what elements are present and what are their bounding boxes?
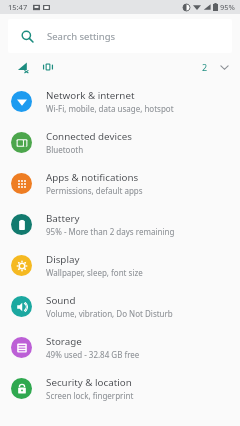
staticText: Permissions, default apps (46, 185, 143, 196)
staticText: Network & internet (46, 89, 135, 102)
staticText: 95% (220, 2, 235, 12)
staticText: Battery (46, 212, 80, 225)
staticText: Connected devices (46, 130, 132, 143)
staticText: Screen lock, fingerprint (46, 390, 134, 401)
staticText: Display (46, 253, 80, 266)
button[interactable]: Display (0, 245, 240, 286)
staticText: 49% used - 32.84 GB free (46, 349, 140, 360)
button[interactable]: Apps & notifications (0, 163, 240, 204)
staticText: Wallpaper, sleep, font size (46, 267, 143, 278)
button[interactable]: Network & internet (0, 81, 240, 122)
staticText: 15:47 (8, 2, 28, 12)
staticText: Bluetooth (46, 144, 84, 155)
button[interactable]: 2 (202, 61, 230, 73)
button[interactable]: Security & location (0, 368, 240, 409)
staticText: 2 (202, 61, 208, 73)
button[interactable]: Sound (0, 286, 240, 327)
staticText: Storage (46, 335, 82, 348)
staticText: Apps & notifications (46, 171, 139, 184)
staticText: Security & location (46, 376, 132, 389)
button[interactable]: Data usage suggestion (16, 60, 30, 74)
staticText: Volume, vibration, Do Not Disturb (46, 308, 173, 319)
button[interactable]: Vibration suggestion (41, 60, 55, 74)
staticText: Sound (46, 294, 76, 307)
staticText: 95% - More than 2 days remaining (46, 226, 175, 237)
button[interactable]: Battery (0, 204, 240, 245)
button[interactable]: Search settings (8, 19, 232, 53)
staticText: Wi-Fi, mobile, data usage, hotspot (46, 103, 174, 114)
staticText: Search settings (47, 30, 116, 43)
button[interactable]: Connected devices (0, 122, 240, 163)
other: Expand suggestions (218, 61, 230, 73)
button[interactable]: Storage (0, 327, 240, 368)
